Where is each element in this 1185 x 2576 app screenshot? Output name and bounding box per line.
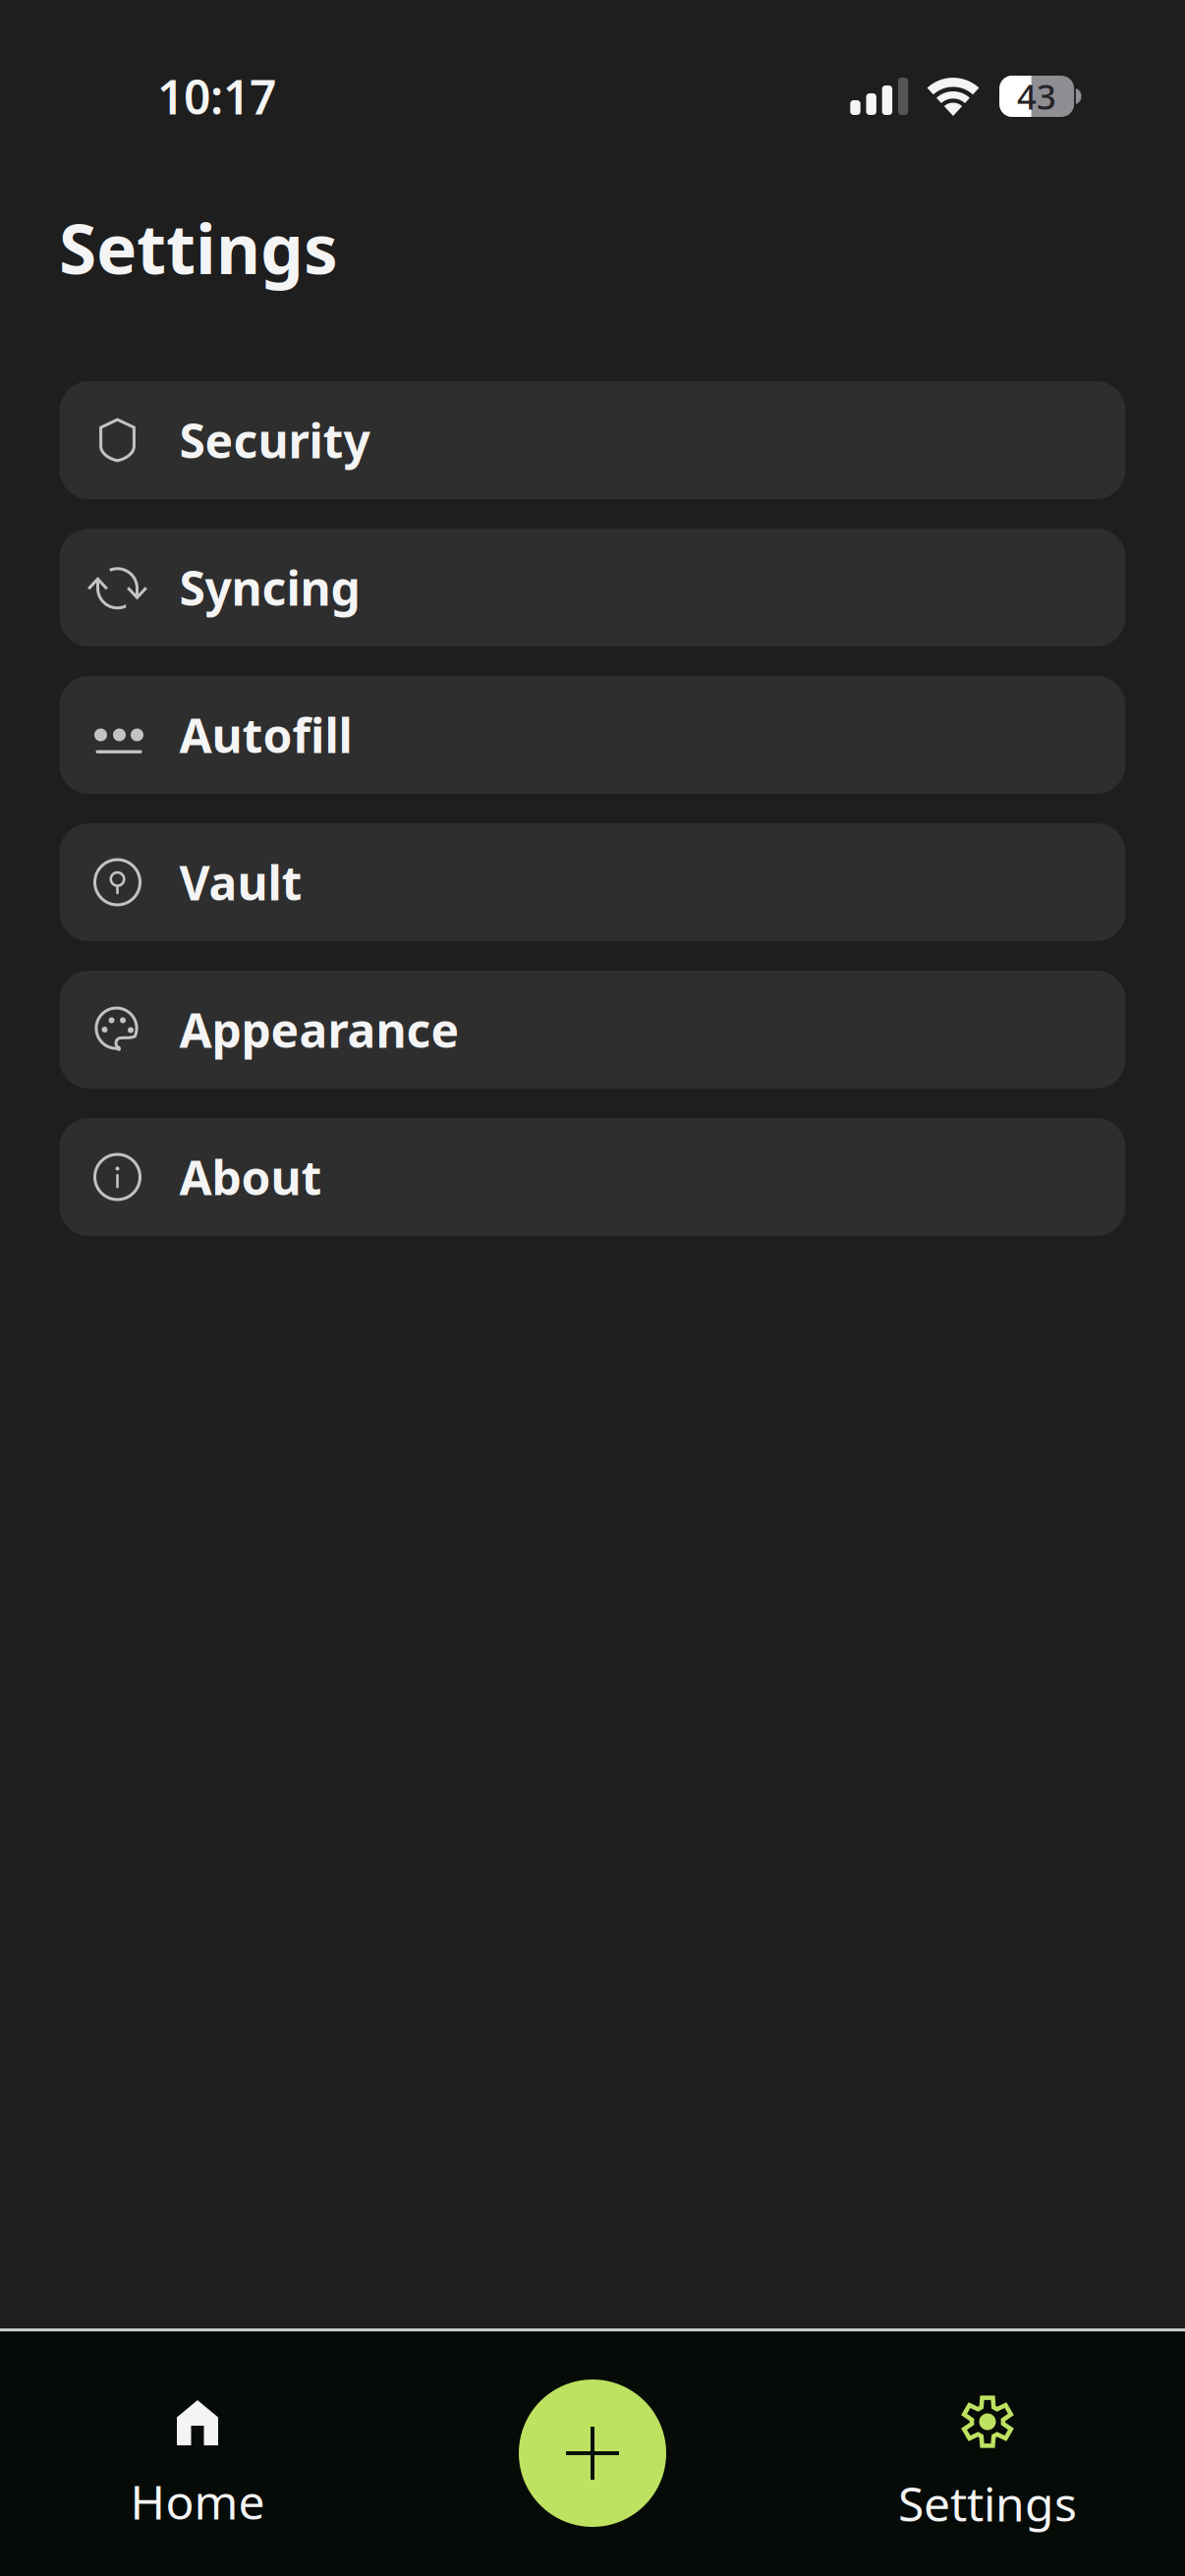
staticText: Autofill [179,704,352,766]
staticText: 43 [1017,74,1056,119]
button[interactable]: Appearance [59,971,1126,1089]
button[interactable]: Syncing [59,529,1126,646]
button[interactable]: Autofill [59,676,1126,794]
button[interactable]: Vault [59,823,1126,941]
button[interactable]: Settings [790,2331,1185,2576]
button[interactable]: Home [0,2331,395,2576]
staticText: Security [179,409,370,471]
staticText: Vault [179,851,302,913]
button[interactable]: About [59,1118,1126,1236]
button[interactable]: Security [59,381,1126,499]
staticText: Settings [59,202,338,293]
staticText: Home [130,2470,265,2532]
staticText: Settings [898,2472,1077,2534]
staticText: 10:17 [157,65,276,128]
staticText: Appearance [179,998,459,1061]
staticText: Syncing [179,556,360,619]
staticText: About [179,1146,322,1208]
button[interactable]: Add [395,2331,790,2576]
